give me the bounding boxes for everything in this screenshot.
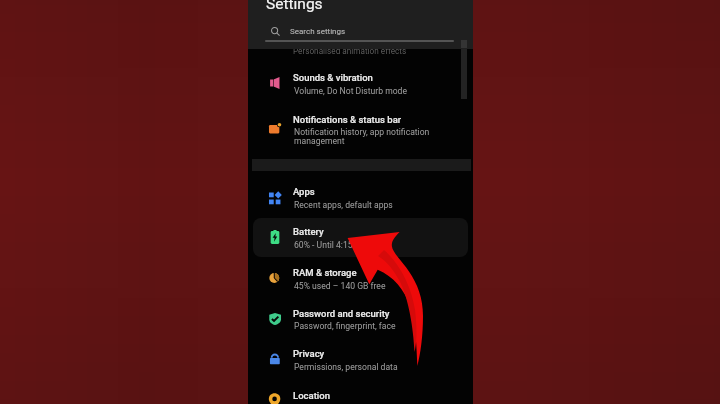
- staticText: Battery: [293, 226, 324, 237]
- staticText: Recent apps, default apps: [294, 200, 393, 210]
- staticText: Sounds & vibration: [293, 72, 373, 83]
- staticText: RAM & storage: [293, 267, 357, 278]
- button[interactable]: Search: [248, 25, 473, 37]
- button[interactable]: [248, 216, 473, 256]
- button[interactable]: [248, 257, 473, 297]
- button[interactable]: [248, 379, 473, 404]
- staticText: 45% used – 140 GB free: [294, 281, 386, 291]
- staticText: Personalised animation effects: [293, 46, 407, 56]
- staticText: Password, fingerprint, face: [294, 321, 396, 331]
- staticText: management: [294, 136, 345, 146]
- staticText: Notifications & status bar: [293, 114, 402, 125]
- staticText: Settings: [266, 0, 323, 13]
- staticText: Apps: [293, 186, 315, 197]
- button[interactable]: [248, 60, 473, 101]
- button[interactable]: [248, 175, 473, 215]
- staticText: Search settings: [290, 27, 346, 36]
- staticText: Volume, Do Not Disturb mode: [294, 86, 407, 96]
- button[interactable]: [248, 101, 473, 151]
- staticText: Permissions, personal data: [294, 362, 398, 372]
- staticText: Privacy: [293, 348, 325, 359]
- staticText: 60% - Until 4:15: [294, 240, 353, 250]
- button[interactable]: [248, 298, 473, 338]
- other: Search: [271, 27, 280, 36]
- button[interactable]: [248, 338, 473, 378]
- staticText: Password and security: [293, 308, 390, 319]
- staticText: Notification history, app notification: [294, 127, 430, 137]
- staticText: Location: [293, 390, 330, 401]
